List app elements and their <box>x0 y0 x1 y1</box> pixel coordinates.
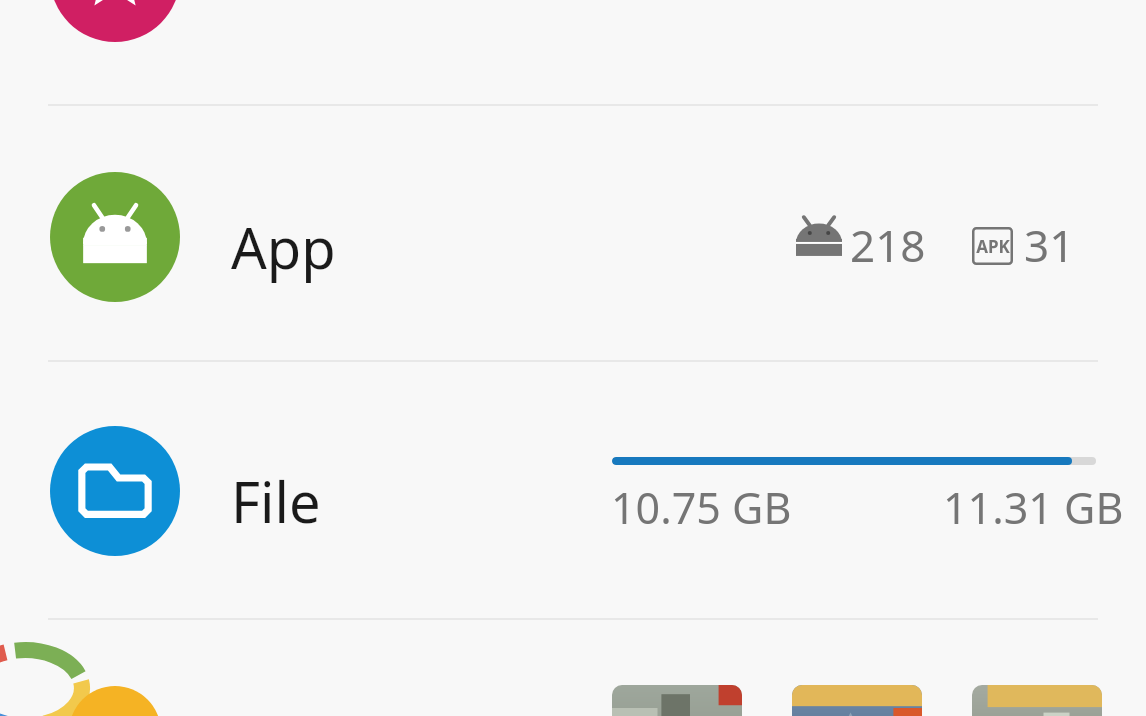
button[interactable]: Images <box>0 624 1146 716</box>
other: Images <box>0 642 90 716</box>
button[interactable]: App <box>0 110 1146 360</box>
staticText: 10.75 GB <box>611 478 792 537</box>
button[interactable]: Photo <box>972 685 1102 716</box>
staticText: 31 <box>1024 215 1075 275</box>
staticText: APK <box>976 235 1010 258</box>
button[interactable]: Photo <box>792 685 922 716</box>
button[interactable]: Favourites <box>0 0 1146 42</box>
staticText: App <box>231 209 336 285</box>
staticText: 11.31 GB <box>943 478 1124 537</box>
staticText: File <box>231 463 321 539</box>
other: Favourites <box>50 0 180 42</box>
staticText: 218 <box>850 215 926 275</box>
button[interactable]: Photo <box>612 685 742 716</box>
button[interactable]: File <box>0 366 1146 618</box>
